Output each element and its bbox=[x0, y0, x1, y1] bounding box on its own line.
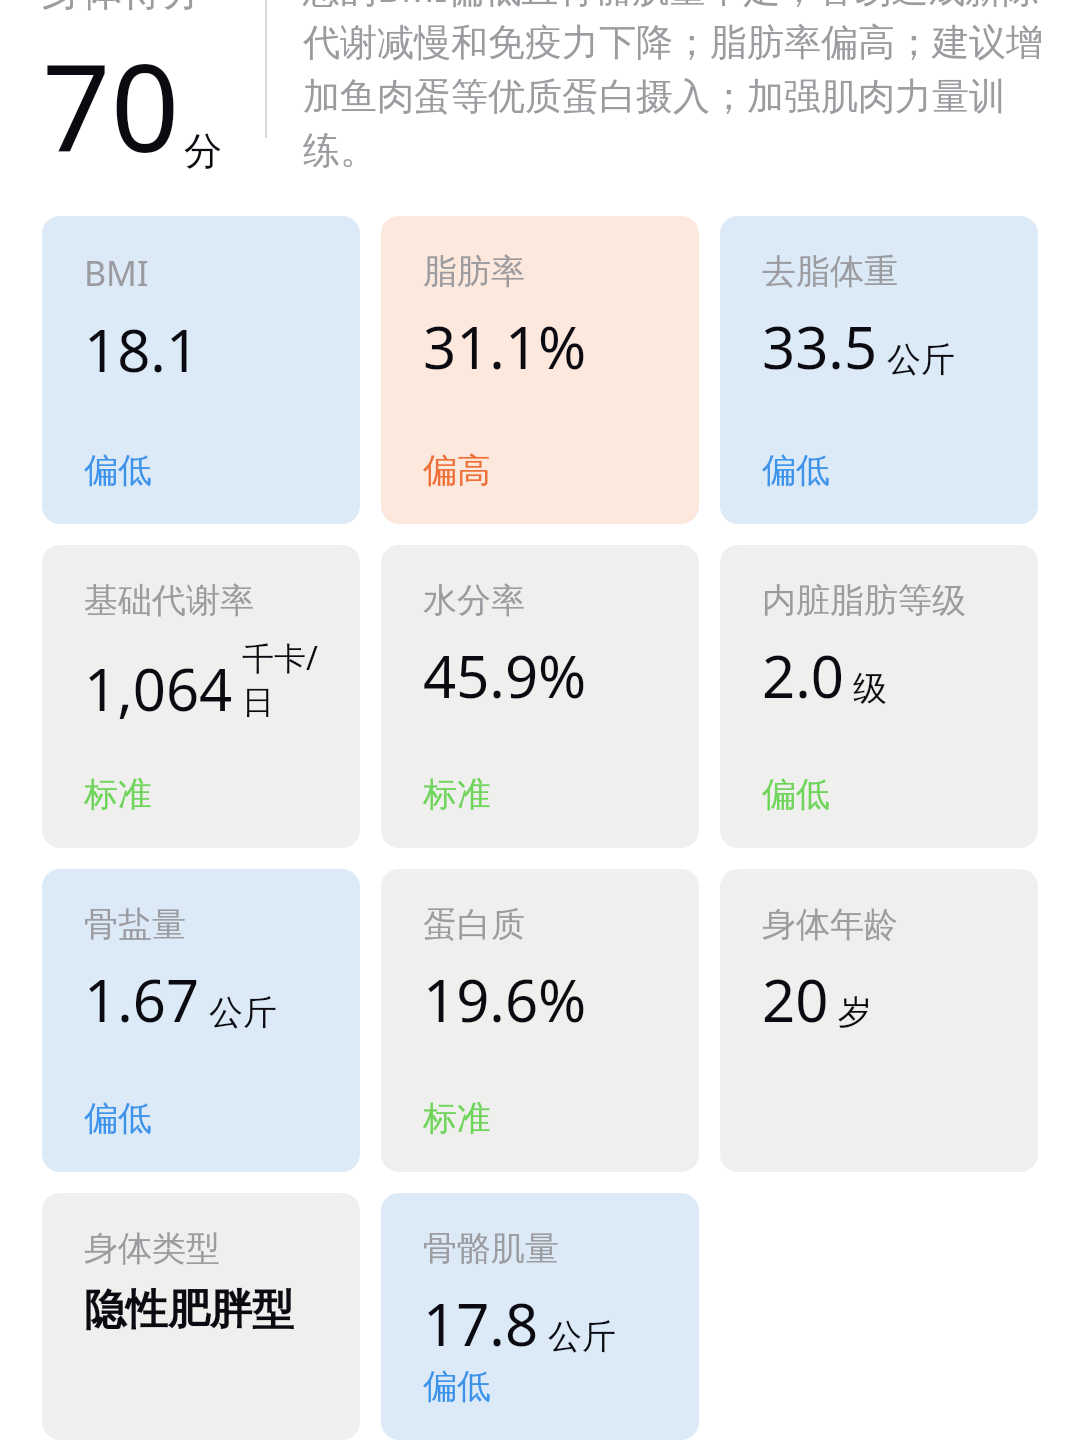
button[interactable]: 身体年龄 bbox=[720, 869, 1038, 1172]
staticText: 分 bbox=[184, 127, 222, 175]
staticText: 千卡/日 bbox=[242, 636, 348, 723]
staticText: 级 bbox=[853, 667, 887, 710]
button[interactable]: 内脏脂肪等级 bbox=[720, 545, 1038, 848]
staticText: 45.9% bbox=[423, 636, 587, 715]
button[interactable]: 骨骼肌量 bbox=[381, 1193, 699, 1440]
staticText: 偏低 bbox=[84, 1097, 152, 1140]
staticText: 身体类型 bbox=[84, 1227, 220, 1270]
staticText: BMI bbox=[84, 250, 149, 296]
staticText: 标准 bbox=[84, 773, 152, 816]
staticText: 标准 bbox=[423, 1097, 491, 1140]
staticText: 公斤 bbox=[209, 991, 277, 1034]
staticText: 基础代谢率 bbox=[84, 579, 254, 622]
staticText: 骨盐量 bbox=[84, 903, 186, 946]
staticText: 内脏脂肪等级 bbox=[762, 579, 966, 622]
staticText: 20 bbox=[762, 960, 829, 1039]
staticText: 18.1 bbox=[84, 310, 200, 389]
staticText: 19.6% bbox=[423, 960, 587, 1039]
staticText: 偏低 bbox=[84, 449, 152, 492]
staticText: 隐性肥胖型 bbox=[84, 1284, 294, 1337]
staticText: 去脂体重 bbox=[762, 250, 898, 293]
button[interactable]: 脂肪率 bbox=[381, 216, 699, 524]
staticText: 标准 bbox=[423, 773, 491, 816]
button[interactable]: 骨盐量 bbox=[42, 869, 360, 1172]
staticText: 岁 bbox=[838, 991, 872, 1034]
staticText: 1.67 bbox=[84, 960, 200, 1039]
staticText: 蛋白质 bbox=[423, 903, 525, 946]
staticText: 您的BMI偏低且骨骼肌量不足，容易造成新陈代谢减慢和免疫力下降；脂肪率偏高；建议… bbox=[303, 0, 1043, 174]
staticText: 偏低 bbox=[762, 449, 830, 492]
staticText: 偏高 bbox=[423, 449, 491, 492]
staticText: 身体年龄 bbox=[762, 903, 898, 946]
staticText: 2.0 bbox=[762, 636, 844, 715]
staticText: 身体得分 bbox=[42, 0, 202, 16]
staticText: 33.5 bbox=[762, 307, 878, 386]
staticText: 脂肪率 bbox=[423, 250, 525, 293]
staticText: 骨骼肌量 bbox=[423, 1227, 559, 1270]
staticText: 水分率 bbox=[423, 579, 525, 622]
staticText: 偏低 bbox=[423, 1365, 491, 1408]
staticText: 70 bbox=[42, 24, 180, 187]
staticText: 1,064 bbox=[84, 649, 233, 728]
button[interactable]: 去脂体重 bbox=[720, 216, 1038, 524]
staticText: 31.1% bbox=[423, 307, 587, 386]
button[interactable]: BMI bbox=[42, 216, 360, 524]
staticText: 公斤 bbox=[548, 1315, 616, 1358]
button[interactable]: 水分率 bbox=[381, 545, 699, 848]
button[interactable]: 身体类型 bbox=[42, 1193, 360, 1440]
staticText: 公斤 bbox=[887, 338, 955, 381]
staticText: 偏低 bbox=[762, 773, 830, 816]
button[interactable]: 基础代谢率 bbox=[42, 545, 360, 848]
staticText: 17.8 bbox=[423, 1284, 539, 1363]
button[interactable]: 蛋白质 bbox=[381, 869, 699, 1172]
